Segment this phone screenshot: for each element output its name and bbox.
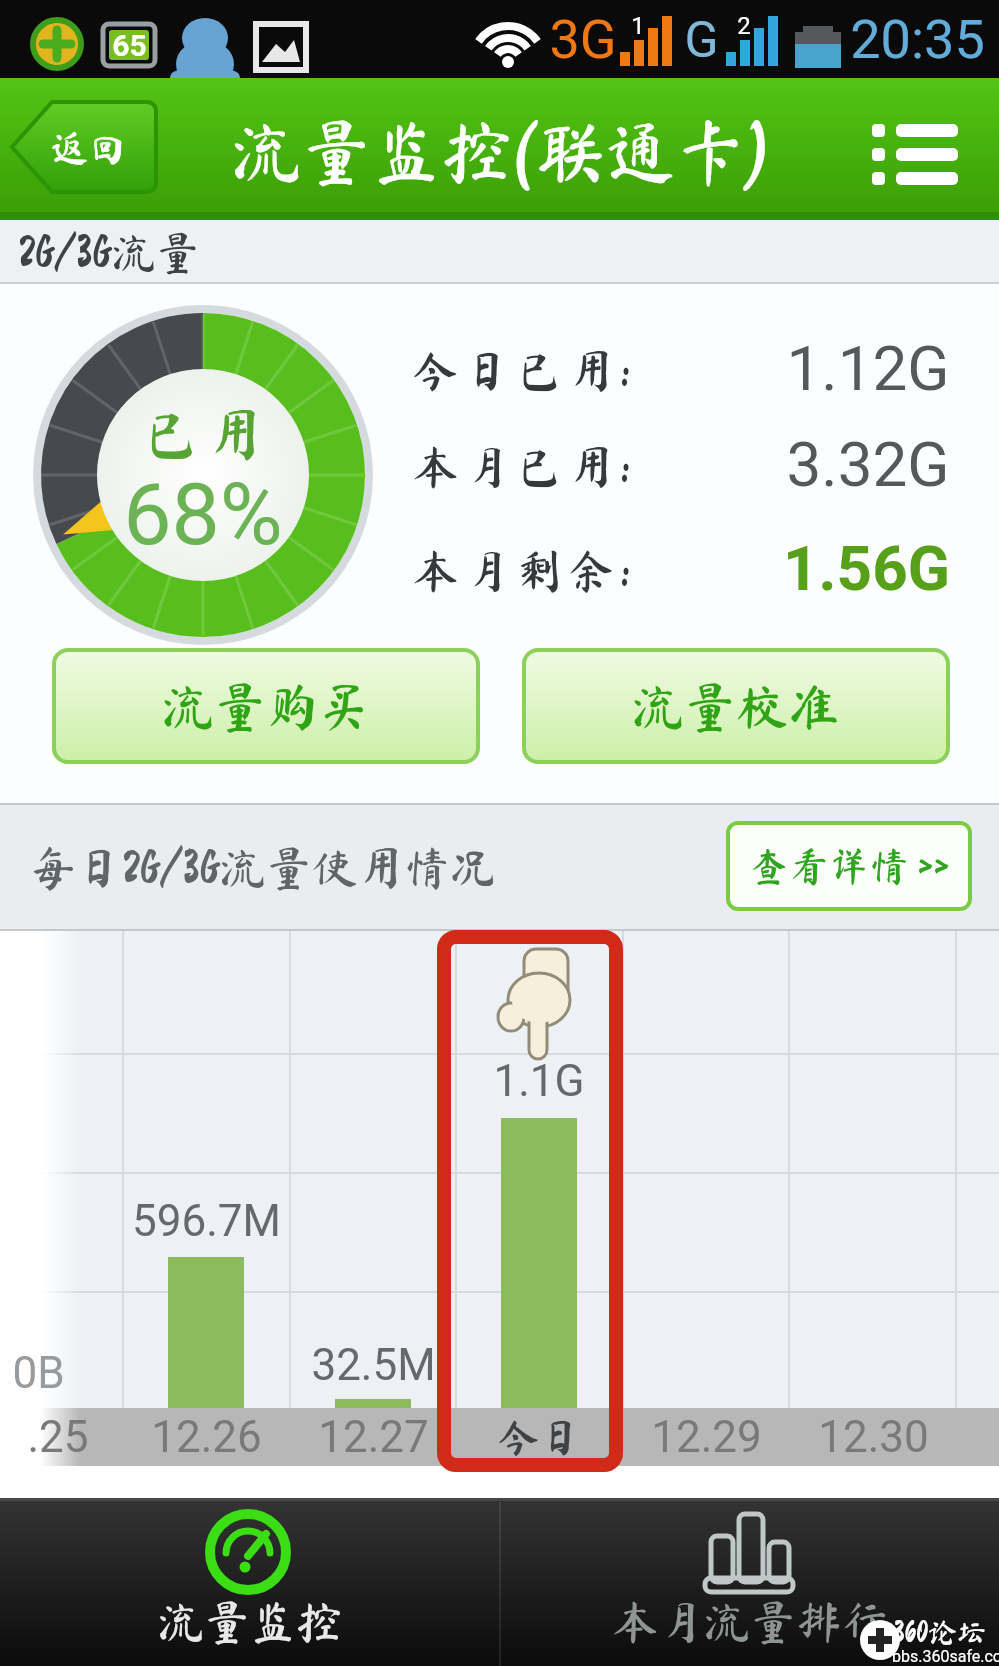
staticText: 65 (112, 28, 147, 62)
staticText: 68% (123, 464, 283, 564)
staticText: 12.26 (151, 1411, 262, 1463)
button[interactable]: 流量校准 (524, 650, 948, 762)
staticText: 流量校准 (632, 680, 841, 732)
staticText: 1 (631, 12, 645, 38)
staticText: 今日已用: (412, 348, 637, 394)
staticText: 360论坛 (894, 1617, 986, 1646)
staticText: 3G (549, 8, 617, 70)
button[interactable]: 本月流量排行 (500, 1498, 999, 1666)
staticText: 本月剩余: (412, 548, 637, 594)
staticText: 返回 (50, 129, 127, 167)
staticText: 本月流量排行 (612, 1599, 888, 1645)
button[interactable]: 查看详情 >> (728, 823, 970, 909)
staticText: 查看详情 >> (749, 846, 950, 886)
staticText: 3.32G (786, 428, 950, 501)
staticText: 12.27 (318, 1411, 429, 1463)
staticText: 2 (737, 12, 751, 38)
staticText: 已用 (139, 406, 267, 462)
staticText: 20:35 (850, 8, 985, 70)
staticText: G (684, 11, 719, 70)
staticText: 1.1G (493, 1055, 585, 1107)
staticText: 流量购买 (162, 680, 371, 732)
button[interactable]: 流量购买 (54, 650, 478, 762)
staticText: bbs.360safe.com (892, 1647, 999, 1666)
staticText: 每日2G/3G流量使用情况 (30, 845, 496, 891)
button[interactable]: 流量监控 (0, 1498, 499, 1666)
button[interactable]: 返回 (8, 98, 160, 196)
staticText: 0B (12, 1347, 65, 1399)
staticText: 596.7M (132, 1195, 281, 1247)
staticText: 12.30 (818, 1411, 929, 1463)
staticText: .25 (27, 1411, 89, 1463)
staticText: 今日 (497, 1416, 582, 1458)
staticText: 本月已用: (412, 444, 637, 490)
staticText: 2G/3G流量 (18, 230, 200, 274)
staticText: 12.29 (651, 1411, 762, 1463)
staticText: 32.5M (311, 1339, 436, 1391)
staticText: 流量监控 (158, 1599, 342, 1645)
staticText: 1.56G (783, 532, 950, 605)
staticText: 流量监控(联通卡) (231, 116, 770, 186)
staticText: 1.12G (786, 332, 950, 405)
button[interactable] (862, 116, 972, 186)
